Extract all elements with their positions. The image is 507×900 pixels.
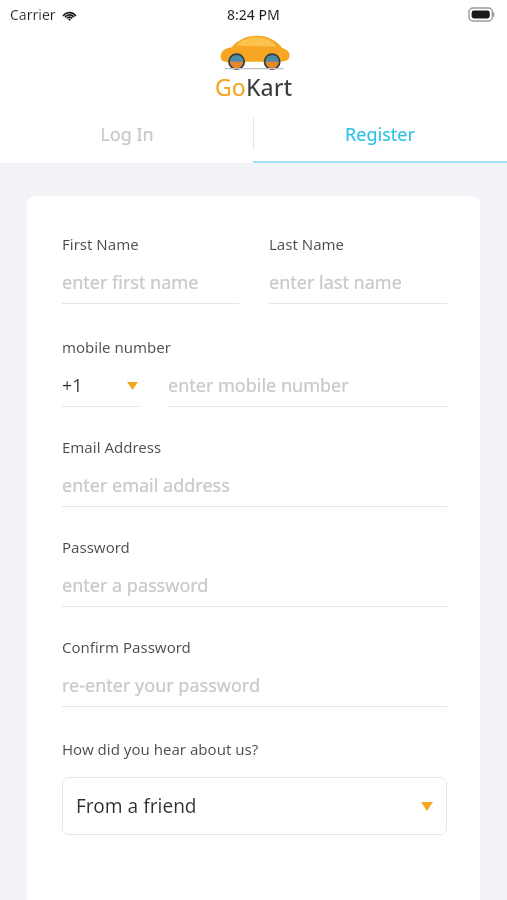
staticText: First Name bbox=[62, 234, 139, 254]
button[interactable]: Email Address bbox=[62, 437, 447, 507]
staticText: enter mobile number bbox=[168, 373, 349, 398]
staticText: enter a password bbox=[62, 573, 209, 598]
staticText: mobile number bbox=[62, 337, 171, 357]
staticText: enter email address bbox=[62, 473, 230, 498]
other: Open referral source list bbox=[421, 802, 433, 811]
staticText: Go bbox=[215, 71, 246, 102]
button[interactable]: enter mobile number bbox=[168, 373, 447, 407]
staticText: enter last name bbox=[269, 270, 402, 295]
button[interactable]: First Name bbox=[62, 234, 239, 304]
staticText: From a friend bbox=[76, 793, 197, 819]
staticText: How did you hear about us? bbox=[62, 739, 259, 759]
button[interactable]: Last Name bbox=[269, 234, 447, 304]
button[interactable]: Log In bbox=[0, 105, 253, 163]
staticText: +1 bbox=[62, 373, 83, 398]
staticText: Confirm Password bbox=[62, 637, 191, 657]
staticText: Log In bbox=[100, 122, 154, 147]
staticText: Kart bbox=[246, 71, 293, 102]
button[interactable]: Password bbox=[62, 537, 447, 607]
staticText: Password bbox=[62, 537, 130, 557]
button[interactable]: Country code +1 bbox=[62, 373, 140, 407]
button[interactable]: Register bbox=[253, 105, 507, 163]
staticText: enter first name bbox=[62, 270, 199, 295]
staticText: 8:24 PM bbox=[227, 5, 280, 24]
staticText: Register bbox=[345, 122, 415, 147]
staticText: Last Name bbox=[269, 234, 345, 254]
button[interactable]: Confirm Password bbox=[62, 637, 447, 707]
staticText: Carrier bbox=[10, 5, 56, 24]
staticText: Email Address bbox=[62, 437, 162, 457]
staticText: re-enter your password bbox=[62, 673, 260, 698]
button[interactable]: From a friend bbox=[62, 777, 447, 835]
